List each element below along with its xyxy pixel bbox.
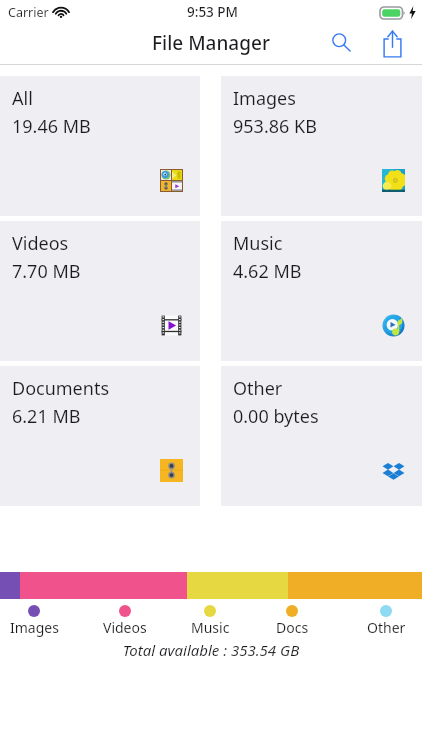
button[interactable]: Music <box>170 605 250 637</box>
button[interactable]: Other <box>221 366 422 506</box>
button[interactable]: Images <box>221 76 422 216</box>
staticText: 19.46 MB <box>12 114 91 139</box>
button[interactable]: Share <box>373 27 411 65</box>
staticText: 7.70 MB <box>12 259 81 284</box>
staticText: Videos <box>12 231 69 256</box>
staticText: Documents <box>12 376 110 401</box>
staticText: Images <box>10 618 59 637</box>
staticText: Other <box>233 376 283 401</box>
button[interactable]: All <box>0 76 200 216</box>
staticText: Videos <box>103 618 147 637</box>
staticText: Images <box>233 86 296 111</box>
button[interactable]: Music <box>221 221 422 361</box>
staticText: Total available : 353.54 GB <box>0 640 422 660</box>
staticText: Music <box>191 618 230 637</box>
staticText: File Manager <box>152 30 270 56</box>
button[interactable]: Images <box>0 605 74 637</box>
staticText: Music <box>233 231 283 256</box>
staticText: 0.00 bytes <box>233 404 319 429</box>
button[interactable]: Videos <box>0 221 200 361</box>
button[interactable]: Search <box>322 27 360 65</box>
staticText: 9:53 PM <box>187 3 238 21</box>
button[interactable]: Other <box>346 605 422 637</box>
staticText: All <box>12 86 33 111</box>
staticText: 6.21 MB <box>12 404 81 429</box>
staticText: 4.62 MB <box>233 259 302 284</box>
button[interactable]: Docs <box>252 605 332 637</box>
staticText: Other <box>367 618 406 637</box>
staticText: Docs <box>276 618 309 637</box>
staticText: Carrier <box>8 4 49 21</box>
button[interactable]: Videos <box>85 605 165 637</box>
staticText: 953.86 KB <box>233 114 317 139</box>
button[interactable]: Documents <box>0 366 200 506</box>
